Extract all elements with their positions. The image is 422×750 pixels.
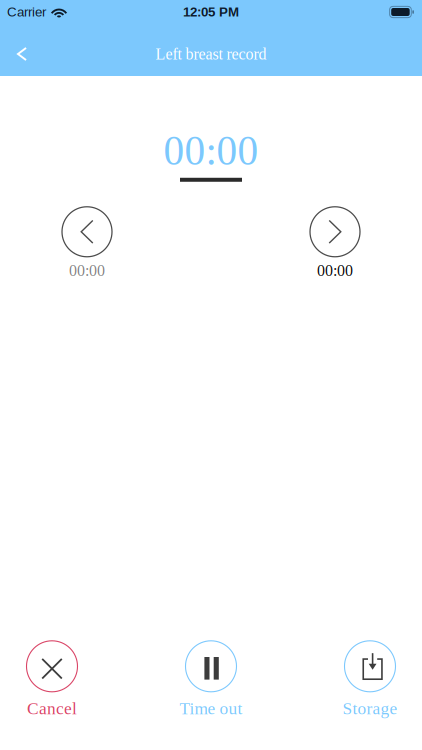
staticText: Left breast record <box>155 45 266 63</box>
button[interactable]: Left breast timer <box>44 207 130 279</box>
staticText: 00:00 <box>69 262 105 279</box>
staticText: 00:00 <box>163 128 258 174</box>
button[interactable]: Cancel <box>9 641 95 718</box>
staticText: Cancel <box>27 699 77 718</box>
button[interactable]: Right breast timer <box>292 207 378 279</box>
staticText: 12:05 PM <box>183 5 239 19</box>
staticText: 00:00 <box>317 262 353 279</box>
button[interactable]: Time out <box>168 641 254 718</box>
button[interactable]: Storage <box>327 641 413 718</box>
button[interactable]: Back <box>0 32 39 76</box>
staticText: Storage <box>342 699 397 718</box>
staticText: Time out <box>179 699 242 718</box>
staticText: Carrier <box>7 5 46 19</box>
